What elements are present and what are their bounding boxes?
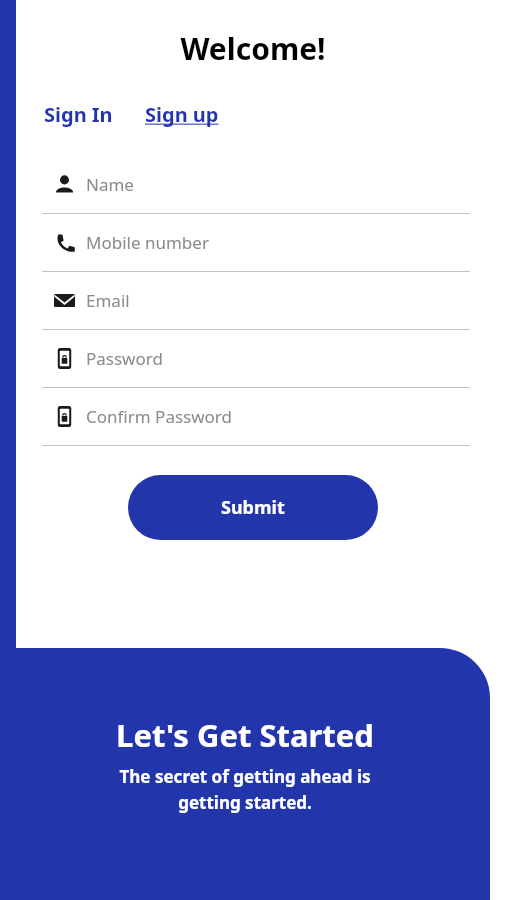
- staticText: Let's Get Started: [20, 714, 470, 756]
- staticText: Name: [86, 173, 134, 196]
- staticText: Confirm Password: [86, 405, 232, 428]
- staticText: Password: [86, 347, 163, 370]
- button[interactable]: Submit: [128, 475, 378, 540]
- staticText: Submit: [221, 495, 285, 520]
- button[interactable]: Sign In: [42, 99, 115, 130]
- other: Confirm Password: [42, 406, 86, 427]
- button[interactable]: Password: [42, 330, 470, 388]
- button[interactable]: Name: [42, 156, 470, 214]
- other: Name: [42, 174, 86, 195]
- other: Mobile number: [42, 232, 86, 253]
- staticText: Mobile number: [86, 231, 209, 254]
- staticText: Email: [86, 289, 130, 312]
- other: Password: [42, 348, 86, 369]
- other: Email: [42, 290, 86, 311]
- button[interactable]: Mobile number: [42, 214, 470, 272]
- staticText: The secret of getting ahead is getting s…: [20, 765, 470, 814]
- button[interactable]: Confirm Password: [42, 388, 470, 446]
- button[interactable]: Email: [42, 272, 470, 330]
- staticText: Sign In: [44, 101, 113, 128]
- staticText: Sign up: [145, 101, 219, 128]
- staticText: Welcome!: [16, 28, 498, 69]
- button[interactable]: Sign up: [143, 99, 221, 130]
